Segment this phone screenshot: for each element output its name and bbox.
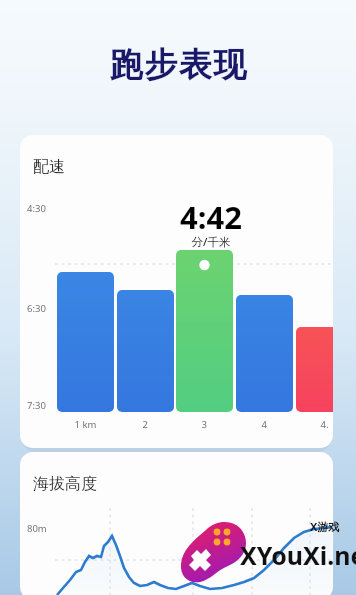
button[interactable]: Altitude chart <box>20 452 333 595</box>
button[interactable]: Pace chart <box>20 135 333 448</box>
